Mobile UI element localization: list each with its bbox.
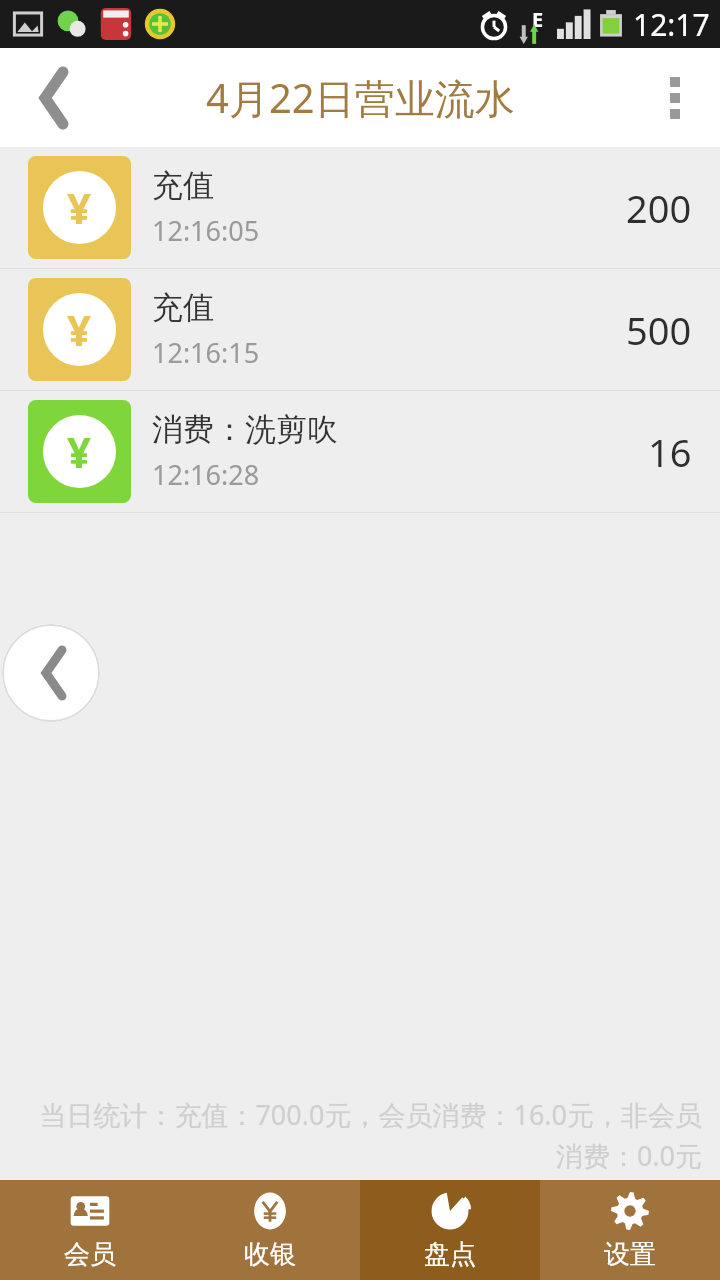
button[interactable]: ¥ bbox=[0, 147, 720, 268]
button[interactable]: 盘点 bbox=[360, 1180, 540, 1280]
staticText: 会员 bbox=[64, 1238, 116, 1271]
staticText: 12:16:28 bbox=[152, 456, 260, 493]
staticText: 12:16:15 bbox=[152, 334, 260, 371]
staticText: ¥ bbox=[67, 179, 92, 236]
button[interactable]: Back bbox=[0, 48, 100, 147]
staticText: 充值 bbox=[152, 166, 214, 205]
button[interactable]: 设置 bbox=[540, 1180, 720, 1280]
staticText: 16 bbox=[648, 426, 692, 478]
staticText: 收银 bbox=[244, 1238, 296, 1271]
button[interactable]: More options bbox=[630, 53, 720, 143]
staticText: E bbox=[532, 6, 544, 33]
staticText: 500 bbox=[626, 304, 692, 356]
staticText: 设置 bbox=[604, 1238, 656, 1271]
button[interactable]: 收银 bbox=[180, 1180, 360, 1280]
staticText: ¥ bbox=[67, 423, 92, 480]
staticText: 当日统计：充值：700.0元，会员消费：16.0元，非会员消费：0.0元 bbox=[18, 1096, 702, 1174]
staticText: 消费：洗剪吹 bbox=[152, 410, 338, 449]
staticText: 12:16:05 bbox=[152, 212, 260, 249]
button[interactable]: ¥ bbox=[0, 269, 720, 390]
button[interactable]: Back bbox=[2, 624, 100, 722]
staticText: 盘点 bbox=[424, 1238, 476, 1271]
button[interactable]: 会员 bbox=[0, 1180, 180, 1280]
button[interactable]: ¥ bbox=[0, 391, 720, 512]
staticText: 4月22日营业流水 bbox=[206, 70, 515, 125]
staticText: 200 bbox=[626, 182, 692, 234]
staticText: 充值 bbox=[152, 288, 214, 327]
staticText: 12:17 bbox=[633, 4, 710, 45]
staticText: ¥ bbox=[67, 301, 92, 358]
